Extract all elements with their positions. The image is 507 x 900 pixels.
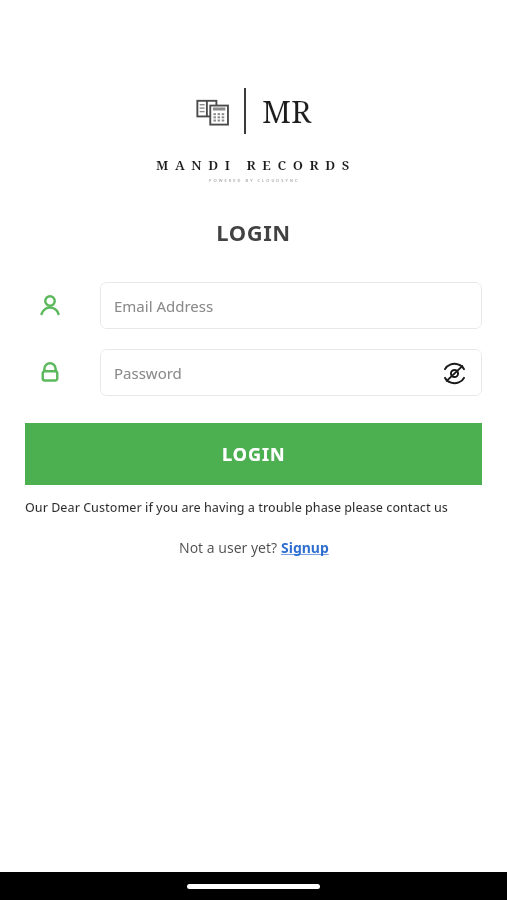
button[interactable]: Password: [100, 349, 482, 396]
staticText: Our Dear Customer if you are having a tr…: [25, 499, 467, 516]
staticText: P O W E R E D B Y C L O U D S Y N C: [0, 178, 507, 183]
button[interactable]: Email Address: [100, 282, 482, 329]
staticText: LOGIN: [222, 442, 286, 467]
staticText: Signup: [281, 538, 329, 557]
button[interactable]: Signup: [281, 538, 329, 557]
staticText: Password: [114, 363, 182, 383]
staticText: Email Address: [114, 296, 214, 316]
staticText: Not a user yet?: [179, 538, 281, 557]
button[interactable]: Show password: [434, 353, 474, 393]
staticText: MR: [262, 90, 312, 132]
button[interactable]: LOGIN: [25, 423, 482, 485]
staticText: M A N D I R E C O R D S: [0, 156, 507, 174]
staticText: LOGIN: [0, 217, 507, 247]
